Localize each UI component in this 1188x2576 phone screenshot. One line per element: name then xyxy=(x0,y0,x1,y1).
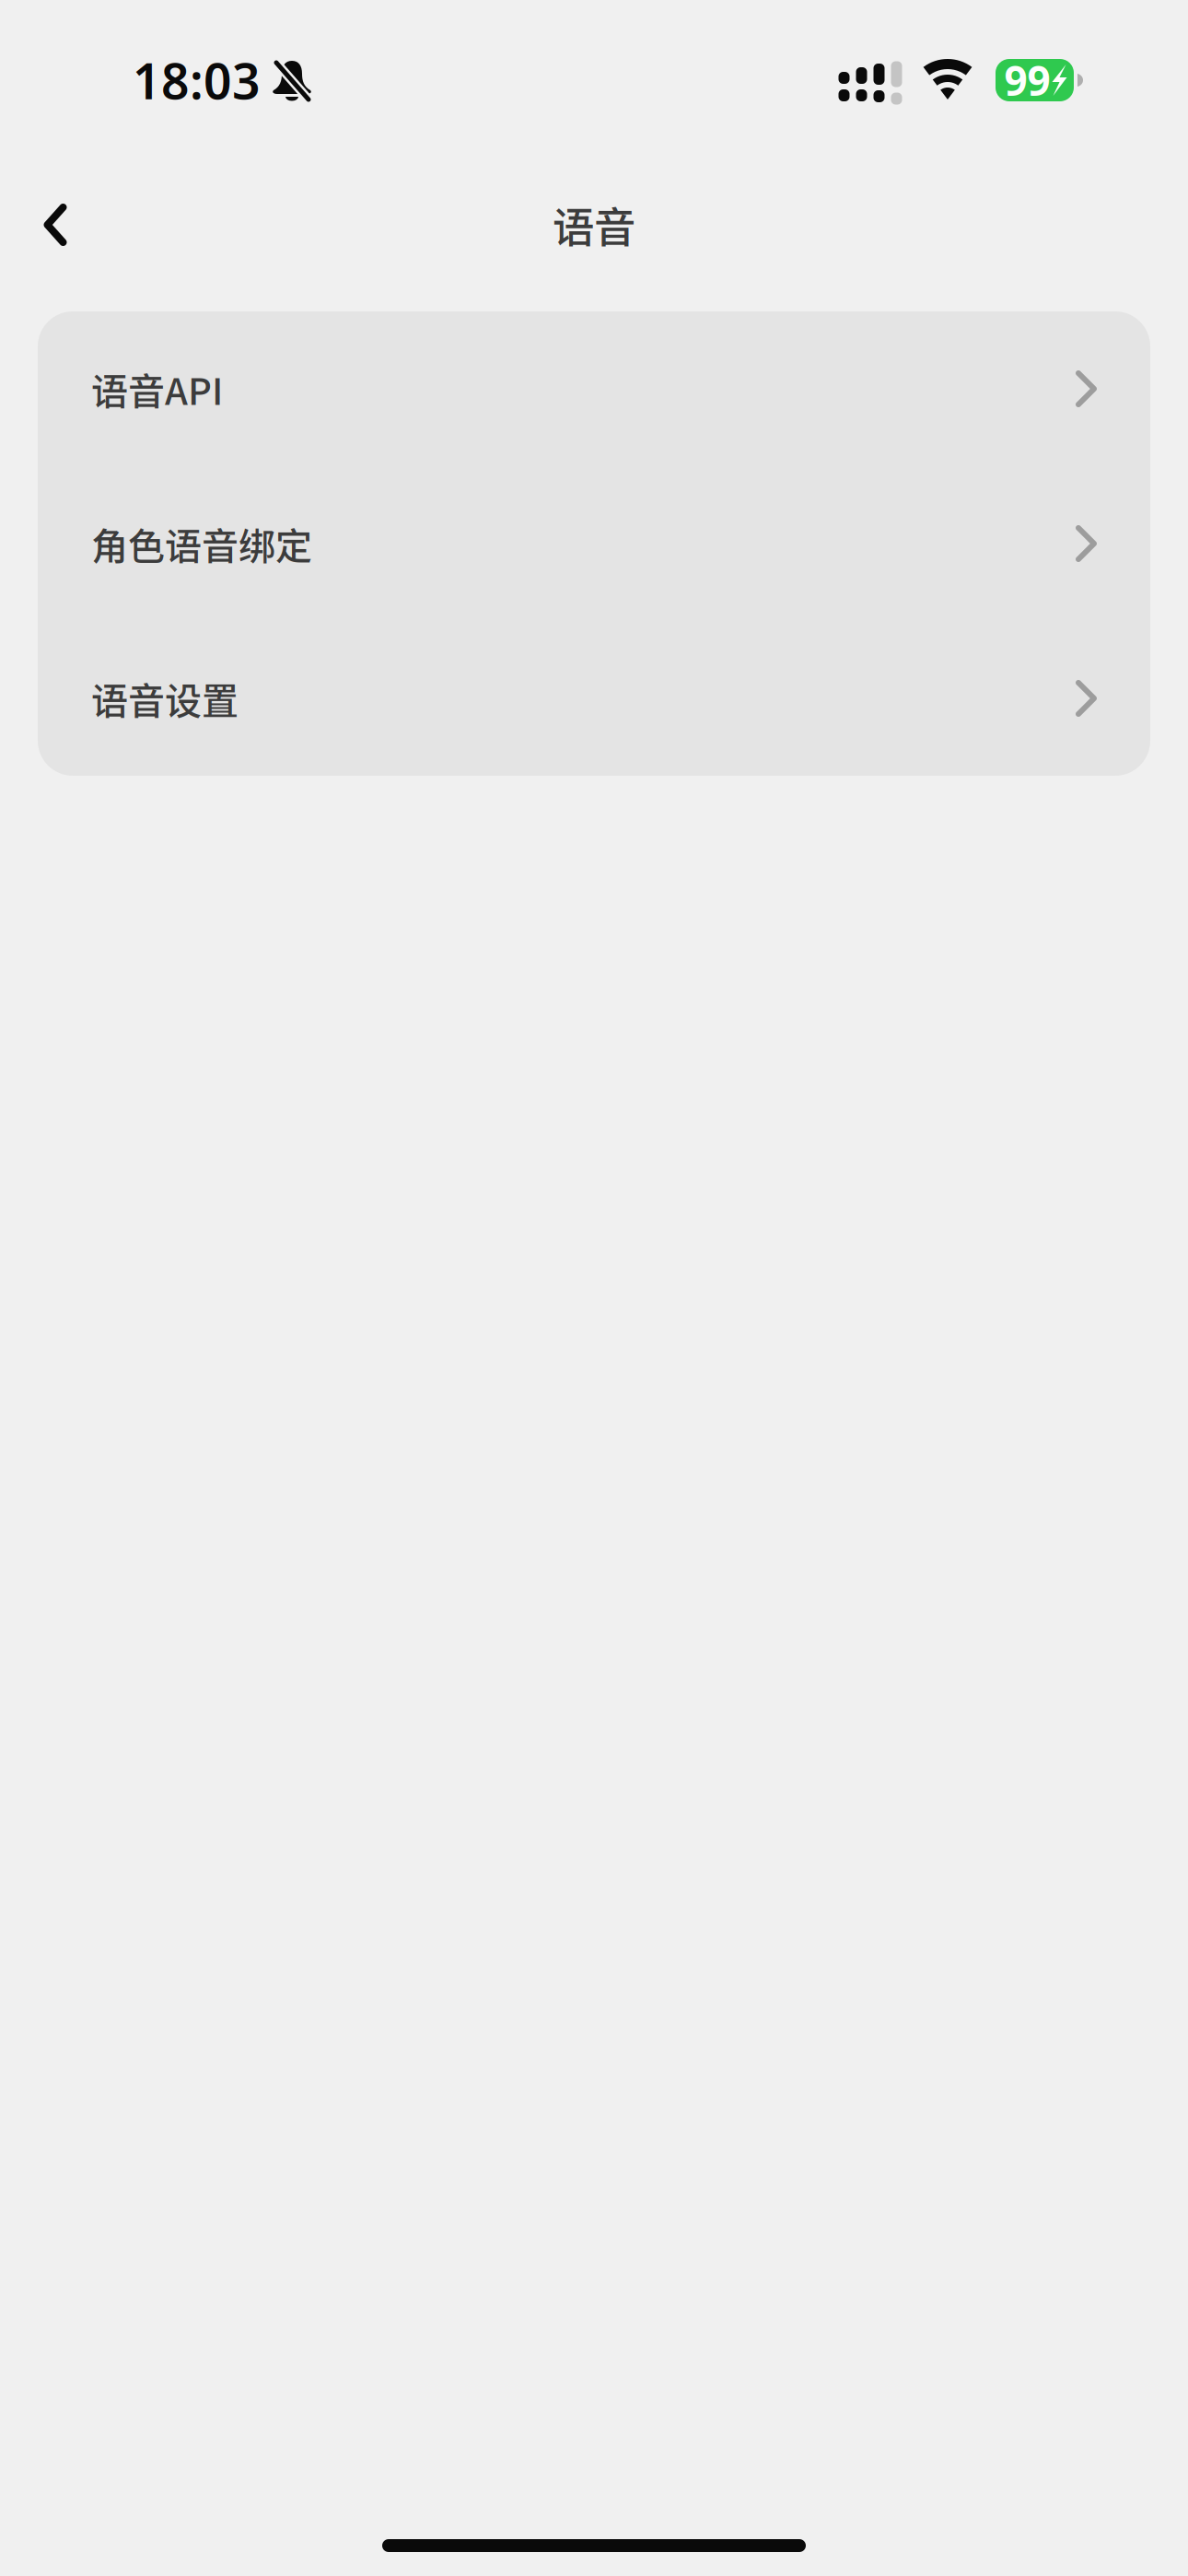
staticText: 18:03 xyxy=(133,48,261,113)
staticText: 语音 xyxy=(553,195,635,255)
button[interactable]: 语音设置 xyxy=(38,621,1150,776)
button[interactable]: 角色语音绑定 xyxy=(38,466,1150,621)
staticText: 语音API xyxy=(91,362,223,415)
staticText: 角色语音绑定 xyxy=(91,517,312,570)
button[interactable]: 语音API xyxy=(38,311,1150,466)
button[interactable]: Back xyxy=(0,181,111,269)
staticText: 语音设置 xyxy=(91,672,239,725)
staticText: 99 xyxy=(1004,53,1050,107)
